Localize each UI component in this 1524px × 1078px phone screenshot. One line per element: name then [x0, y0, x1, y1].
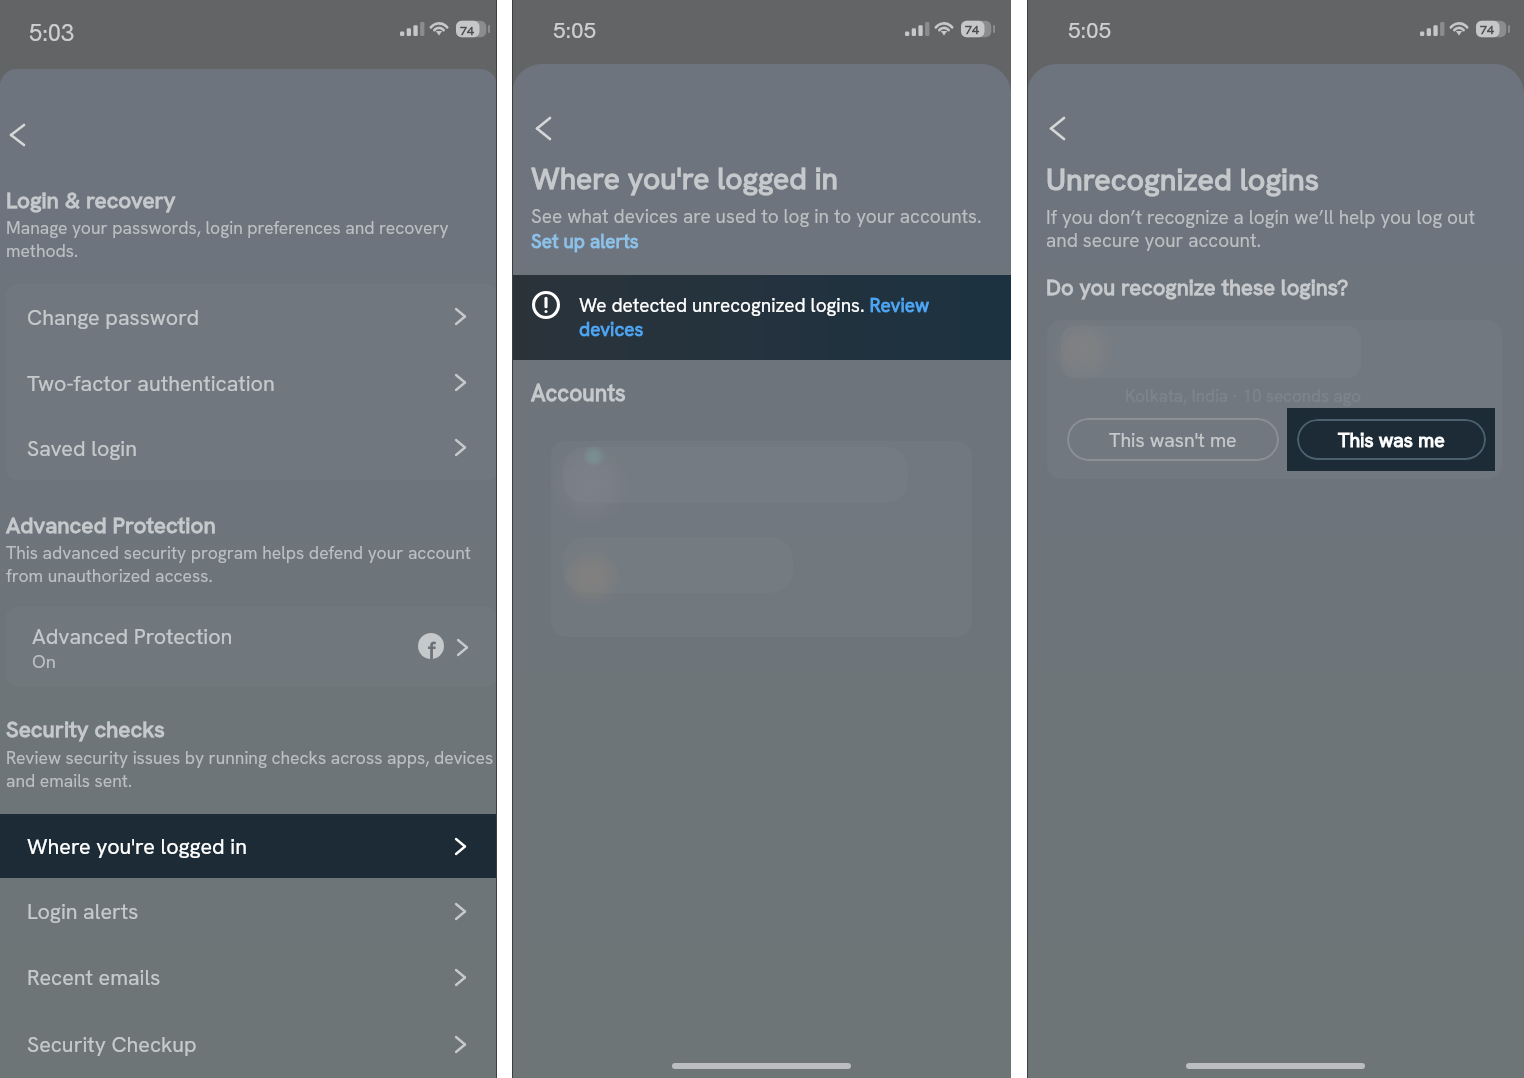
staticText: Kolkata, India · 10 seconds ago — [1125, 385, 1361, 407]
staticText: We detected unrecognized logins. Review … — [579, 293, 941, 342]
staticText: This was me — [1338, 427, 1445, 452]
button[interactable]: Back — [0, 116, 36, 154]
button[interactable]: Advanced Protection — [5, 607, 497, 687]
button[interactable]: Security Checkup — [0, 1011, 497, 1077]
staticText: 5:05 — [1068, 15, 1112, 44]
button[interactable]: Where you're logged in — [0, 814, 497, 878]
staticText: Two-factor authentication — [27, 369, 275, 397]
staticText: Unrecognized logins — [1046, 159, 1320, 199]
staticText: 5:03 — [29, 17, 75, 48]
button[interactable]: Login alerts — [0, 878, 497, 944]
staticText: If you don’t recognize a login we’ll hel… — [1046, 205, 1503, 252]
staticText: f — [428, 636, 436, 659]
staticText: Login alerts — [27, 897, 139, 925]
button[interactable]: Recent emails — [0, 944, 497, 1010]
button[interactable]: Back — [1038, 109, 1076, 147]
staticText: 74 — [965, 21, 980, 37]
staticText: See what devices are used to log in to y… — [531, 204, 982, 229]
staticText: Review security issues by running checks… — [6, 746, 497, 792]
button[interactable]: This wasn't me — [1067, 418, 1279, 461]
button[interactable]: Change password — [0, 284, 497, 349]
staticText: Saved login — [27, 434, 137, 462]
staticText: Advanced Protection — [6, 510, 216, 539]
staticText: Where you're logged in — [27, 832, 247, 860]
staticText: 74 — [1480, 21, 1495, 37]
button[interactable]: Back — [524, 109, 562, 147]
staticText: Advanced Protection — [32, 622, 233, 650]
button[interactable]: Two-factor authentication — [0, 350, 497, 415]
button[interactable]: This was me — [1287, 408, 1495, 471]
staticText: Recent emails — [27, 963, 161, 991]
staticText: Security Checkup — [27, 1030, 197, 1058]
staticText: On — [32, 649, 56, 673]
staticText: This wasn't me — [1109, 427, 1237, 452]
staticText: Security checks — [6, 714, 165, 743]
staticText: 5:05 — [553, 15, 597, 44]
button[interactable]: We detected unrecognized logins. Review … — [512, 275, 1011, 360]
staticText: 74 — [460, 22, 475, 38]
staticText: Where you're logged in — [531, 159, 838, 198]
staticText: Change password — [27, 303, 200, 331]
staticText: Accounts — [531, 378, 626, 408]
button[interactable]: Saved login — [0, 415, 497, 480]
staticText: This advanced security program helps def… — [6, 541, 485, 587]
staticText: Do you recognize these logins? — [1046, 273, 1349, 302]
button[interactable]: Set up alerts — [531, 229, 639, 254]
staticText: Login & recovery — [6, 185, 176, 214]
staticText: Manage your passwords, login preferences… — [6, 216, 472, 262]
